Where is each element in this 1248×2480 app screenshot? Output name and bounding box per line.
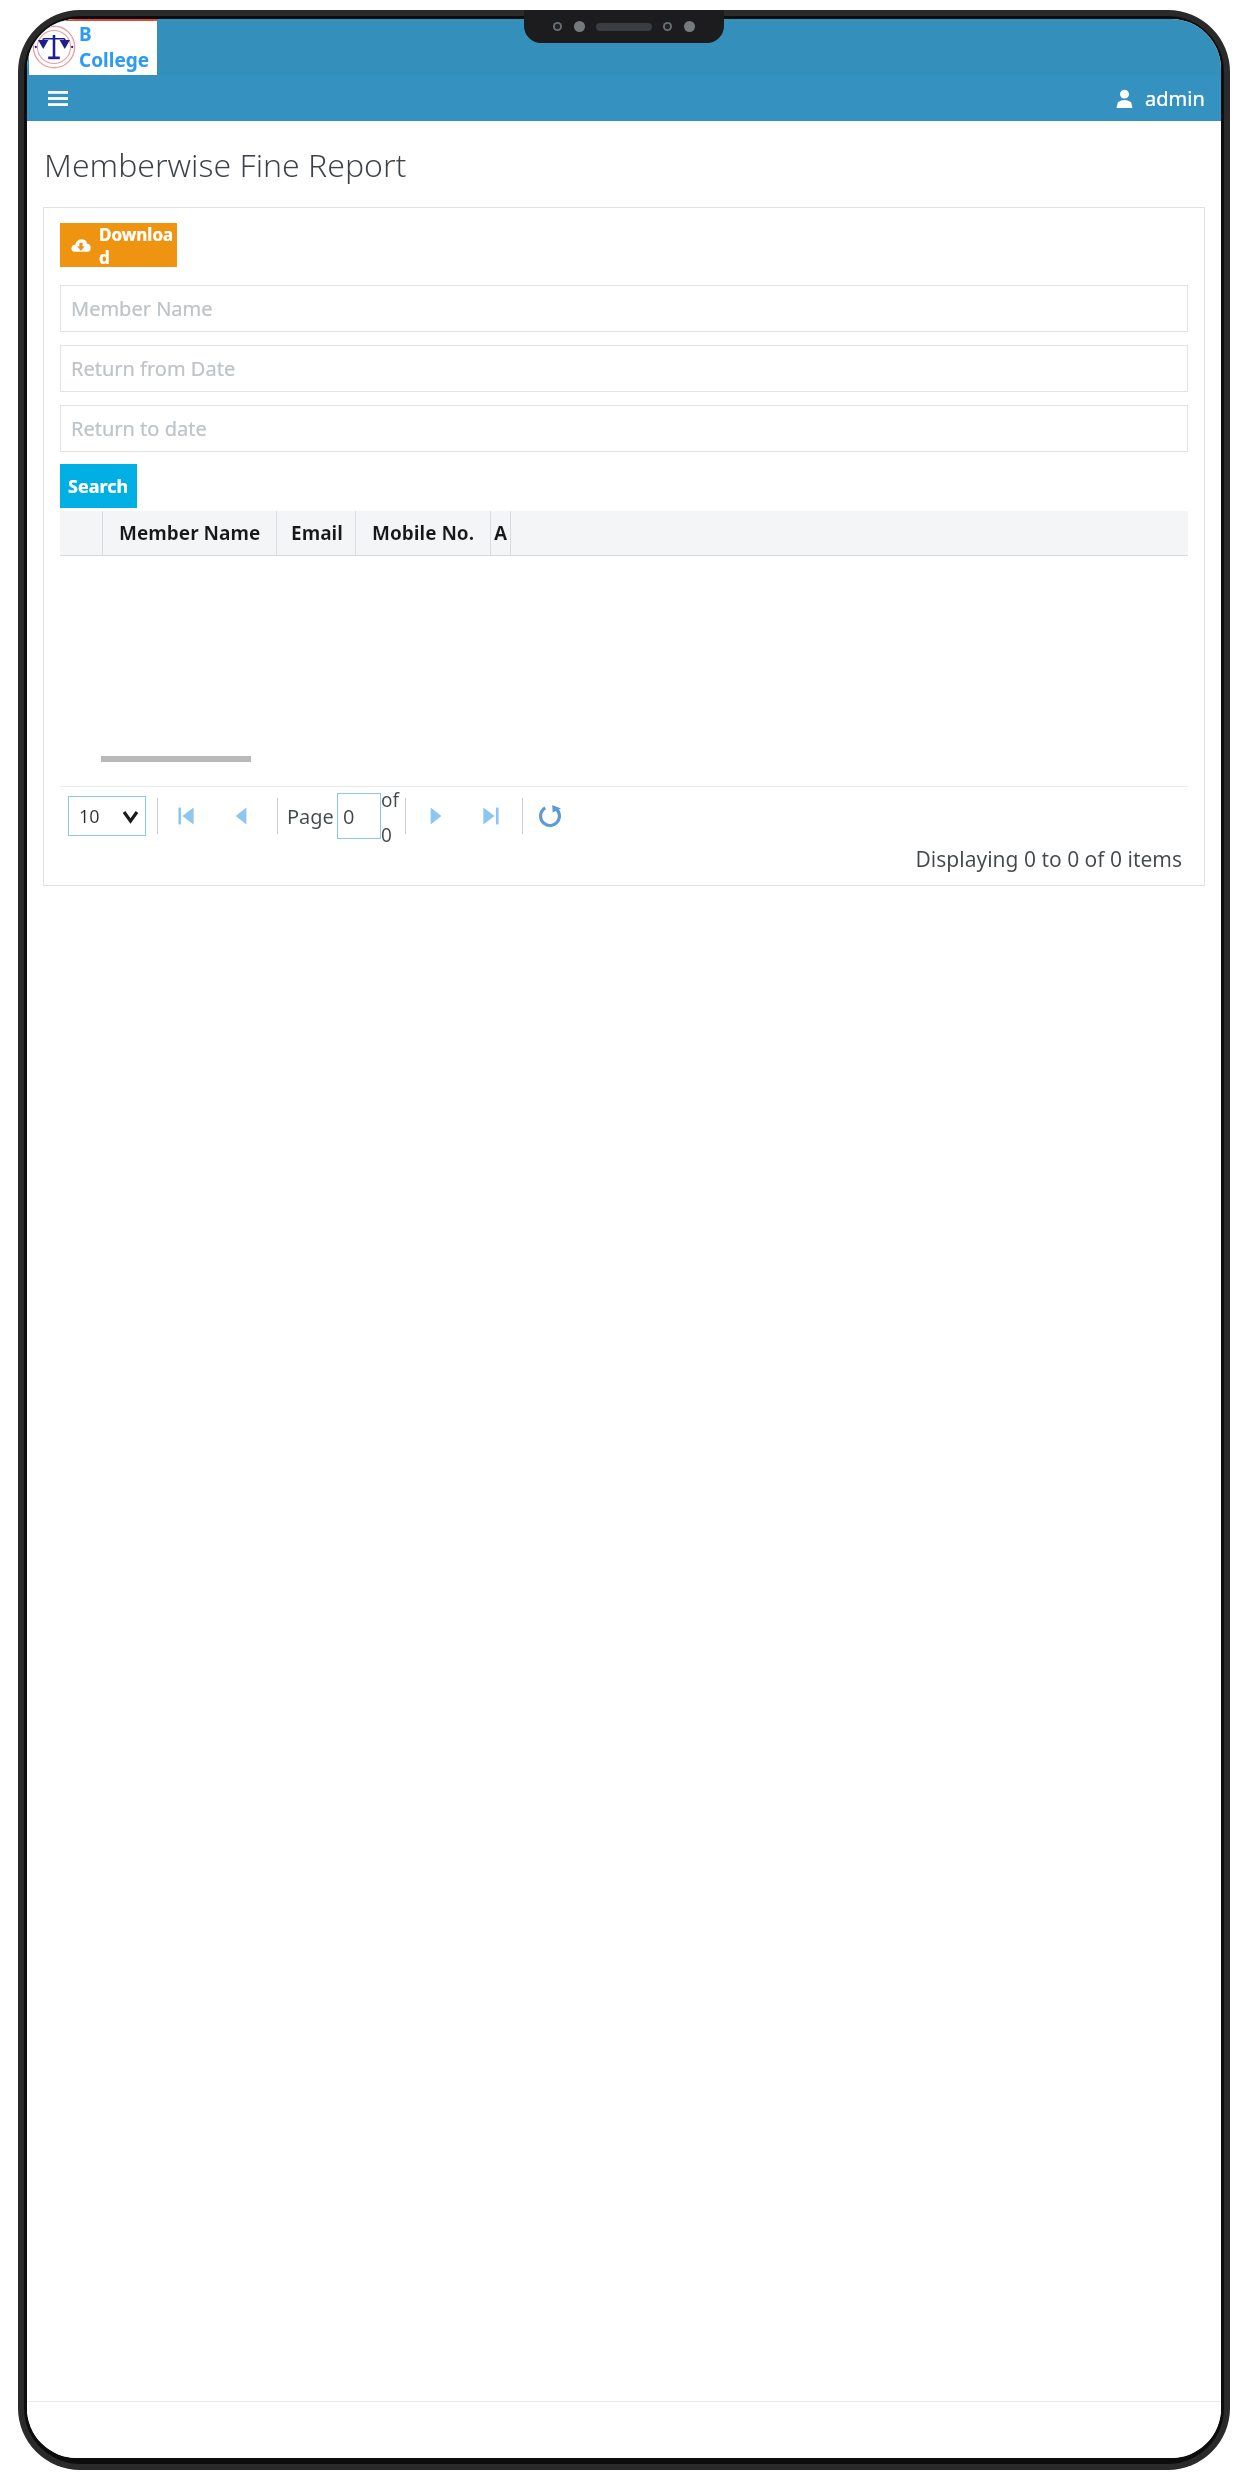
button[interactable]: Return from Date bbox=[60, 345, 1188, 392]
button[interactable]: Refresh bbox=[535, 801, 565, 831]
button[interactable]: Search bbox=[60, 464, 137, 508]
staticText: A bbox=[494, 520, 508, 546]
staticText: Return to date bbox=[71, 415, 207, 442]
button[interactable]: Previous page bbox=[227, 801, 257, 831]
button[interactable]: Last page bbox=[476, 801, 506, 831]
button[interactable]: 10 bbox=[68, 796, 146, 836]
button[interactable]: Menu bbox=[41, 81, 75, 115]
staticText: Displaying 0 to 0 of 0 items bbox=[915, 845, 1182, 874]
button[interactable]: 0 bbox=[337, 793, 381, 839]
staticText: Member Name bbox=[119, 520, 261, 546]
staticText: Member Name bbox=[71, 295, 213, 322]
staticText: 0 bbox=[381, 822, 392, 845]
staticText: Return from Date bbox=[71, 355, 236, 382]
staticText: Memberwise Fine Report bbox=[44, 143, 407, 187]
staticText: Mobile No. bbox=[372, 520, 475, 546]
staticText: admin bbox=[1145, 85, 1205, 112]
button[interactable]: First page bbox=[171, 801, 201, 831]
button[interactable]: Next page bbox=[420, 801, 450, 831]
staticText: Search bbox=[68, 474, 129, 499]
staticText: Email bbox=[291, 520, 343, 546]
staticText: Download bbox=[99, 223, 177, 267]
button[interactable]: Return to date bbox=[60, 405, 1188, 452]
staticText: of bbox=[381, 787, 400, 813]
button[interactable]: Download bbox=[60, 223, 177, 267]
staticText: 0 bbox=[343, 803, 355, 830]
staticText: B bbox=[79, 21, 92, 47]
staticText: College bbox=[79, 47, 150, 73]
button[interactable]: Member Name bbox=[60, 285, 1188, 332]
button[interactable]: admin bbox=[1115, 85, 1205, 112]
staticText: Page bbox=[287, 803, 334, 830]
staticText: 10 bbox=[79, 804, 100, 829]
